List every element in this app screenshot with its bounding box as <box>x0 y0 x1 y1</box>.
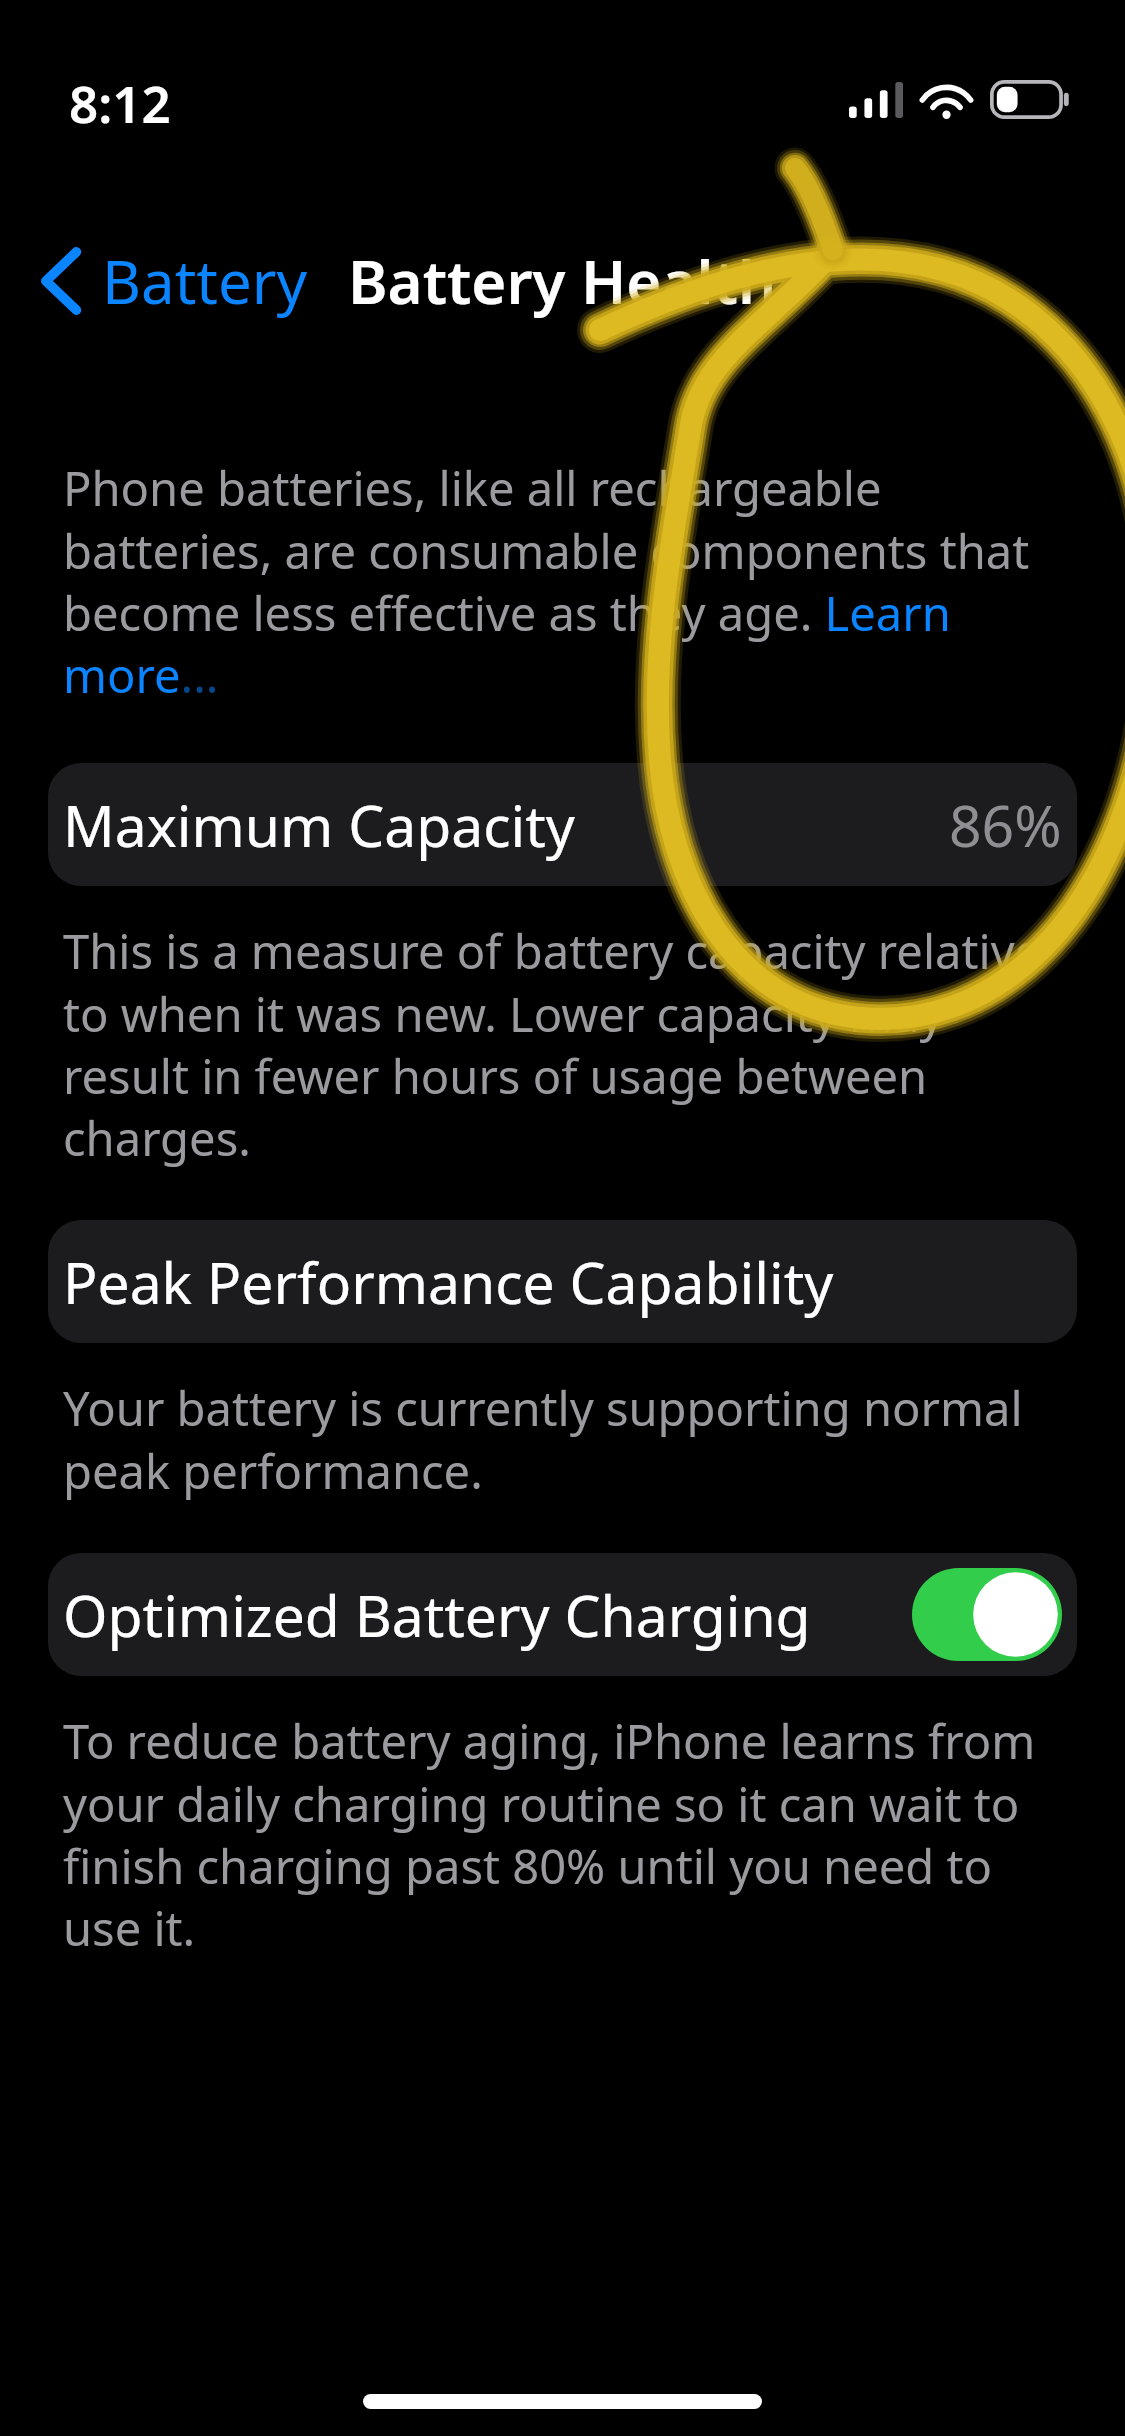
staticText: 86% <box>949 786 1062 864</box>
button[interactable]: Phone batteries, like all rechargeable b… <box>63 456 1059 706</box>
button[interactable]: Peak Performance Capability <box>48 1220 1077 1343</box>
button[interactable]: Battery <box>0 222 344 340</box>
other: Optimized Battery Charging toggle, on <box>912 1568 1062 1661</box>
staticText: Maximum Capacity <box>63 786 575 864</box>
staticText: Peak Performance Capability <box>63 1243 834 1321</box>
staticText: Optimized Battery Charging <box>63 1576 811 1654</box>
staticText: Battery Health <box>348 240 777 322</box>
staticText: This is a measure of battery capacity re… <box>63 919 1059 1169</box>
button[interactable]: Maximum Capacity <box>48 763 1077 886</box>
staticText: 8:12 <box>69 68 171 137</box>
staticText: To reduce battery aging, iPhone learns f… <box>63 1709 1059 1959</box>
button[interactable]: Optimized Battery Charging <box>48 1553 1077 1676</box>
staticText: Your battery is currently supporting nor… <box>63 1376 1059 1502</box>
staticText: Battery <box>102 240 308 322</box>
